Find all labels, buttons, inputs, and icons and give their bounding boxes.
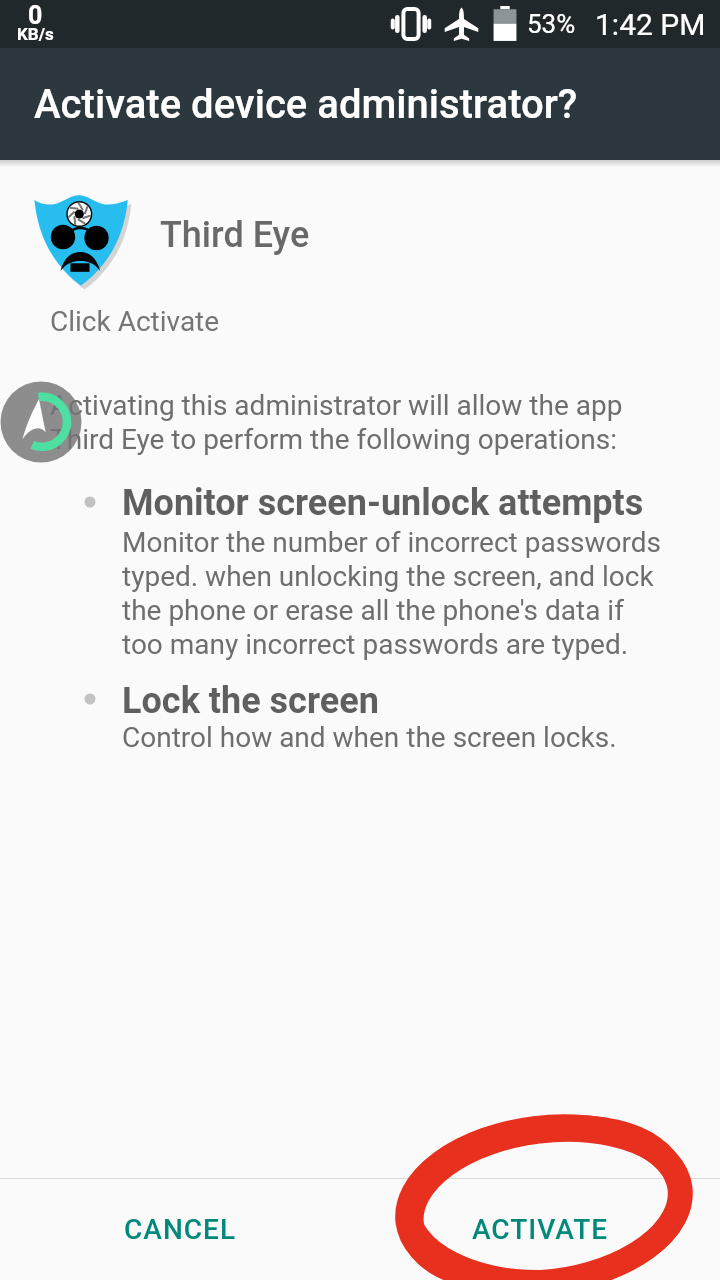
staticText: ACTIVATE bbox=[472, 1213, 609, 1246]
staticText: Click Activate bbox=[50, 305, 220, 338]
staticText: 0 bbox=[28, 1, 43, 30]
button[interactable]: CANCEL bbox=[0, 1179, 360, 1280]
staticText: Control how and when the screen locks. bbox=[122, 721, 617, 754]
staticText: Third Eye bbox=[160, 214, 310, 256]
staticText: KB/s bbox=[17, 24, 54, 42]
staticText: 1:42 PM bbox=[595, 7, 706, 42]
staticText: CANCEL bbox=[124, 1213, 237, 1246]
staticText: Lock the screen bbox=[122, 680, 379, 722]
staticText: Activating this administrator will allow… bbox=[50, 389, 623, 456]
button[interactable]: ACTIVATE bbox=[360, 1179, 720, 1280]
staticText: 53% bbox=[527, 9, 576, 39]
staticText: Monitor screen-unlock attempts bbox=[122, 482, 644, 524]
staticText: Monitor the number of incorrect password… bbox=[122, 526, 662, 661]
staticText: Activate device administrator? bbox=[34, 81, 578, 128]
